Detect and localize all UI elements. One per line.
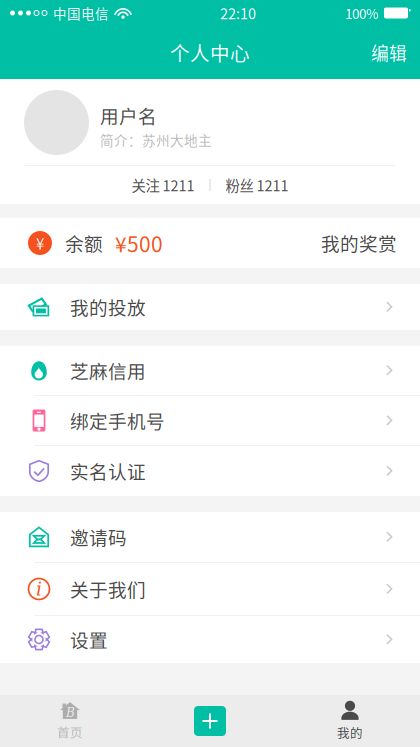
staticText: B [66,706,75,720]
button[interactable]: 邀请码 [0,512,420,562]
staticText: 简介：苏州大地主 [100,130,212,150]
staticText: 首页 [57,723,83,741]
staticText: 邀请码 [70,523,127,550]
staticText: 中国电信 [53,3,109,23]
button[interactable]: i [0,563,420,615]
staticText: 关于我们 [70,575,146,602]
staticText: 实名认证 [70,457,146,484]
button[interactable]: 编辑 [357,30,420,75]
staticText: 粉丝 1211 [225,175,288,195]
staticText: 设置 [70,626,108,653]
staticText: 个人中心 [170,38,250,67]
staticText: 我的奖赏 [321,229,397,256]
button[interactable]: B [0,695,140,747]
staticText: 100% [345,3,378,23]
button[interactable]: 我的投放 [0,284,420,330]
staticText: 芝麻信用 [70,357,146,384]
staticText: 22:10 [220,2,256,23]
button[interactable]: 绑定手机号 [0,396,420,445]
staticText: ¥500 [115,228,163,258]
staticText: 余额 [65,229,103,256]
staticText: 绑定手机号 [70,407,165,434]
staticText: 编辑 [371,40,407,65]
staticText: 我的投放 [70,293,146,320]
button[interactable]: ¥ [0,218,420,268]
staticText: 用户名 [100,102,157,129]
button[interactable]: 设置 [0,616,420,663]
button[interactable]: 实名认证 [0,446,420,496]
staticText: i [36,578,42,600]
button[interactable]: 我的 [280,695,420,747]
staticText: 关注 1211 [131,175,194,195]
button[interactable]: 芝麻信用 [0,346,420,395]
staticText: 我的 [337,723,363,742]
button[interactable]: 新建 [140,695,280,747]
staticText: ¥ [36,232,44,254]
